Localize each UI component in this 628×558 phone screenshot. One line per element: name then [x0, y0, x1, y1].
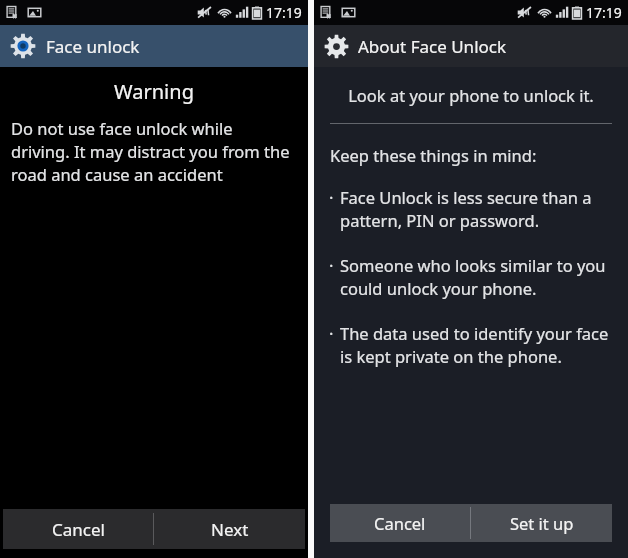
button[interactable]: About Face Unlock [314, 25, 628, 67]
staticText: Look at your phone to unlock it. [326, 84, 616, 106]
staticText: Warning [0, 78, 308, 105]
staticText: · [329, 186, 334, 208]
staticText: Cancel [52, 518, 105, 541]
staticText: 17:19 [586, 3, 622, 22]
staticText: Face Unlock is less secure than a patter… [340, 186, 616, 232]
staticText: Someone who looks similar to you could u… [340, 254, 616, 300]
staticText: · [329, 254, 334, 276]
staticText: The data used to identify your face is k… [340, 322, 616, 368]
button[interactable]: Cancel [330, 504, 470, 542]
staticText: Set it up [510, 512, 574, 534]
staticText: Cancel [374, 512, 426, 534]
staticText: About Face Unlock [358, 35, 507, 58]
button[interactable]: Next [154, 509, 305, 549]
staticText: Do not use face unlock while driving. It… [11, 117, 294, 186]
staticText: Face unlock [46, 35, 140, 58]
staticText: Keep these things in mind: [330, 144, 537, 166]
staticText: · [329, 322, 334, 344]
staticText: Next [211, 518, 249, 541]
button[interactable]: Set it up [471, 504, 612, 542]
button[interactable]: Cancel [3, 509, 153, 549]
button[interactable]: Face unlock [0, 25, 308, 67]
staticText: 17:19 [266, 3, 302, 22]
